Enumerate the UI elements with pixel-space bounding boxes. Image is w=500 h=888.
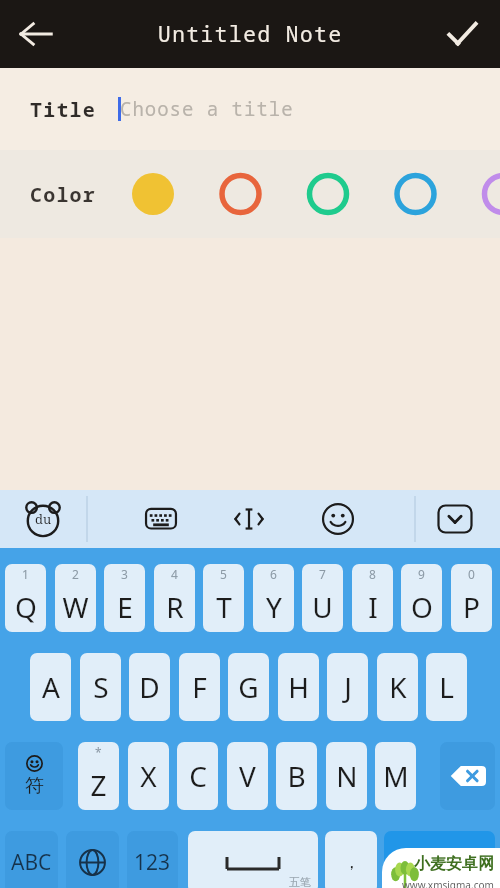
staticText: Choose a title [120,96,294,122]
button[interactable]: Keyboard layout [138,496,184,542]
button[interactable]: J [327,653,368,721]
staticText: Z [90,766,107,804]
button[interactable]: Save [434,6,490,62]
staticText: J [344,668,352,706]
staticText: A [42,668,60,706]
staticText: L [439,668,454,706]
staticText: W [62,588,89,626]
button[interactable]: V [227,742,268,810]
button[interactable]: Hide keyboard [432,496,478,542]
button[interactable]: Change language [66,831,119,888]
staticText: E [117,588,133,626]
staticText: 7 [319,566,326,582]
button[interactable]: 3 [104,564,145,632]
button[interactable]: Emoji [315,496,361,542]
staticText: R [166,588,184,626]
button[interactable]: Input method logo [20,496,66,542]
button[interactable]: Title [0,68,500,150]
button[interactable]: Enter [384,831,495,888]
button[interactable]: 7 [302,564,343,632]
staticText: S [93,668,109,706]
button[interactable]: F [179,653,220,721]
staticText: 123 [134,848,171,877]
button[interactable]: Comma [325,831,377,888]
staticText: 8 [369,566,376,582]
staticText: 9 [418,566,425,582]
staticText: C [189,757,207,795]
button[interactable]: X [128,742,169,810]
staticText: Untitled Note [158,20,343,49]
staticText: 5 [220,566,227,582]
button[interactable]: Numbers [127,831,178,888]
staticText: K [389,668,407,706]
button[interactable]: Move cursor [226,496,272,542]
button[interactable]: Backspace [440,742,495,810]
button[interactable]: 9 [401,564,442,632]
staticText: www.xmsigma.com [402,878,494,888]
staticText: ABC [11,848,52,877]
staticText: P [463,588,480,626]
staticText: * [95,744,102,760]
button[interactable]: A [30,653,71,721]
staticText: B [287,757,306,795]
staticText: Q [15,588,37,626]
staticText: du [35,510,52,528]
staticText: G [238,668,259,706]
staticText: 符 [25,774,44,798]
staticText: ， [343,852,360,873]
button[interactable]: C [177,742,218,810]
staticText: X [140,757,157,795]
button[interactable]: L [426,653,467,721]
staticText: 4 [171,566,178,582]
staticText: D [139,668,160,706]
button[interactable]: Color option 2 [219,172,263,216]
button[interactable]: Color option 5 [483,172,500,216]
staticText: N [336,757,358,795]
button[interactable]: 5 [203,564,244,632]
staticText: M [383,757,409,795]
button[interactable]: M [375,742,416,810]
button[interactable]: 1 [5,564,46,632]
staticText: U [312,588,333,626]
staticText: Title [30,96,96,123]
button[interactable]: H [278,653,319,721]
button[interactable]: 4 [154,564,195,632]
button[interactable]: 0 [451,564,492,632]
button[interactable]: 2 [55,564,96,632]
staticText: F [192,668,207,706]
button[interactable]: Color option 3 [307,172,351,216]
button[interactable]: Symbols [5,742,63,810]
button[interactable]: Color option 4 [395,172,439,216]
button[interactable]: Color option 1 [131,172,175,216]
staticText: 0 [468,566,475,582]
staticText: V [239,757,256,795]
staticText: 小麦安卓网 [414,854,494,874]
button[interactable]: B [276,742,317,810]
button[interactable]: 6 [253,564,294,632]
staticText: Color [30,181,96,208]
staticText: 1 [22,566,29,582]
staticText: H [288,668,309,706]
staticText: 3 [121,566,128,582]
button[interactable]: ABC mode [5,831,58,888]
staticText: I [368,588,378,626]
staticText: O [411,588,433,626]
button[interactable]: G [228,653,269,721]
button[interactable]: K [377,653,418,721]
staticText: 6 [270,566,277,582]
button[interactable]: S [80,653,121,721]
staticText: T [216,588,232,626]
button[interactable]: * [78,742,119,810]
button[interactable]: Space [188,831,318,888]
button[interactable]: D [129,653,170,721]
button[interactable]: 8 [352,564,393,632]
staticText: Y [266,588,282,626]
button[interactable]: Back [8,6,64,62]
button[interactable]: N [326,742,367,810]
staticText: 五笔 [289,875,311,888]
staticText: 2 [72,566,79,582]
